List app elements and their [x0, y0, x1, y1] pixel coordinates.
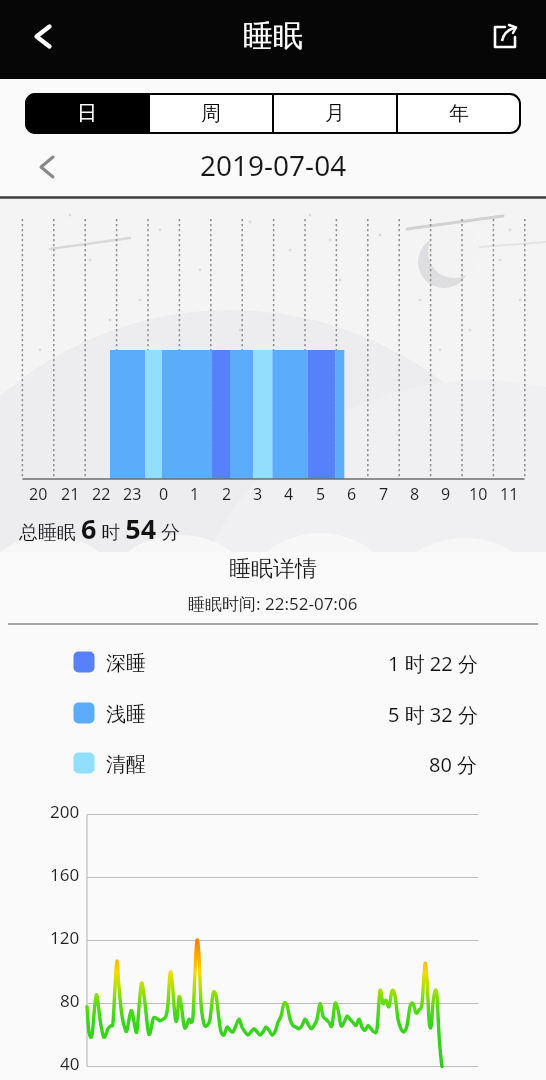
staticText: 日 [77, 101, 97, 126]
staticText: 清醒 [106, 752, 146, 777]
staticText: 22 [92, 483, 111, 505]
button[interactable]: 深睡 [0, 648, 546, 678]
button[interactable]: 年 [397, 93, 521, 134]
staticText: 1 时 22 分 [388, 650, 478, 677]
staticText: 11 [500, 483, 519, 505]
staticText: 1 [190, 483, 200, 505]
staticText: 浅睡 [106, 702, 146, 727]
button[interactable]: 日 [25, 93, 149, 134]
staticText: 睡眠 [243, 17, 303, 55]
staticText: 7 [379, 483, 389, 505]
button[interactable]: 周 [149, 93, 273, 134]
staticText: 睡眠时间: 22:52-07:06 [188, 592, 358, 615]
staticText: 4 [284, 483, 294, 505]
staticText: 6 [347, 483, 357, 505]
staticText: 8 [410, 483, 420, 505]
staticText: 10 [469, 483, 488, 505]
staticText: 21 [61, 483, 80, 505]
staticText: 80 [60, 989, 80, 1012]
staticText: 月 [325, 101, 345, 126]
staticText: 80 分 [429, 751, 478, 778]
staticText: 深睡 [106, 651, 146, 676]
staticText: 9 [441, 483, 451, 505]
button[interactable] [16, 12, 72, 68]
button[interactable]: 浅睡 [0, 699, 546, 729]
staticText: 周 [201, 101, 221, 126]
staticText: 年 [449, 101, 469, 126]
staticText: 40 [60, 1052, 80, 1075]
button[interactable] [28, 147, 68, 187]
staticText: 5 [316, 483, 326, 505]
staticText: 0 [159, 483, 169, 505]
staticText: 总睡眠 6 时 54 分 [19, 510, 181, 547]
button[interactable]: 清醒 [0, 749, 546, 779]
staticText: 睡眠详情 [229, 555, 317, 583]
staticText: 5 时 32 分 [388, 701, 478, 728]
staticText: 20 [29, 483, 48, 505]
staticText: 23 [123, 483, 142, 505]
staticText: 2 [222, 483, 232, 505]
button[interactable]: 月 [273, 93, 397, 134]
staticText: 2019-07-04 [200, 146, 347, 184]
button[interactable] [478, 10, 530, 62]
staticText: 200 [50, 800, 80, 823]
staticText: 3 [253, 483, 263, 505]
staticText: 160 [50, 863, 80, 886]
staticText: 120 [50, 926, 80, 949]
